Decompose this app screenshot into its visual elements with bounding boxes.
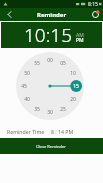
staticText: 30 bbox=[47, 109, 53, 116]
staticText: 10 bbox=[70, 70, 76, 77]
button[interactable]: Back bbox=[0, 8, 18, 21]
staticText: 15 bbox=[73, 83, 79, 90]
staticText: AM bbox=[76, 32, 84, 39]
staticText: 00 bbox=[47, 57, 53, 64]
staticText: 55 bbox=[34, 60, 40, 67]
staticText: 35 bbox=[34, 106, 40, 113]
button[interactable]: Close Reminder bbox=[0, 138, 103, 154]
staticText: 10:15 bbox=[24, 22, 73, 48]
staticText: 25 bbox=[60, 106, 66, 113]
staticText: 45 bbox=[21, 83, 27, 90]
staticText: 8 : 14 PM bbox=[51, 128, 74, 135]
staticText: 20 bbox=[70, 96, 76, 103]
staticText: 8:15 bbox=[88, 1, 98, 8]
staticText: Reminder bbox=[37, 11, 67, 19]
staticText: 50 bbox=[24, 70, 30, 77]
staticText: Close Reminder bbox=[36, 144, 67, 149]
button[interactable]: Alarm bbox=[87, 8, 103, 21]
staticText: PM bbox=[76, 37, 84, 44]
staticText: 40 bbox=[24, 96, 30, 103]
staticText: Reminder Time bbox=[7, 128, 45, 135]
staticText: 05 bbox=[60, 60, 66, 67]
